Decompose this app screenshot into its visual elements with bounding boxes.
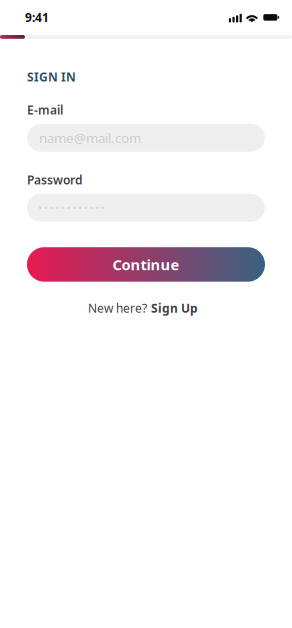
staticText: SIGN IN [27, 69, 76, 85]
staticText: 9:41 [25, 9, 49, 25]
staticText: Continue [112, 255, 179, 274]
button[interactable]: Continue [27, 247, 265, 282]
staticText: name@mail.com [39, 129, 141, 147]
staticText: E-mail [27, 102, 63, 118]
button[interactable]: New here? [24, 300, 262, 316]
staticText: Password [27, 172, 83, 188]
staticText: New here? [88, 300, 147, 316]
staticText: Sign Up [151, 300, 198, 316]
